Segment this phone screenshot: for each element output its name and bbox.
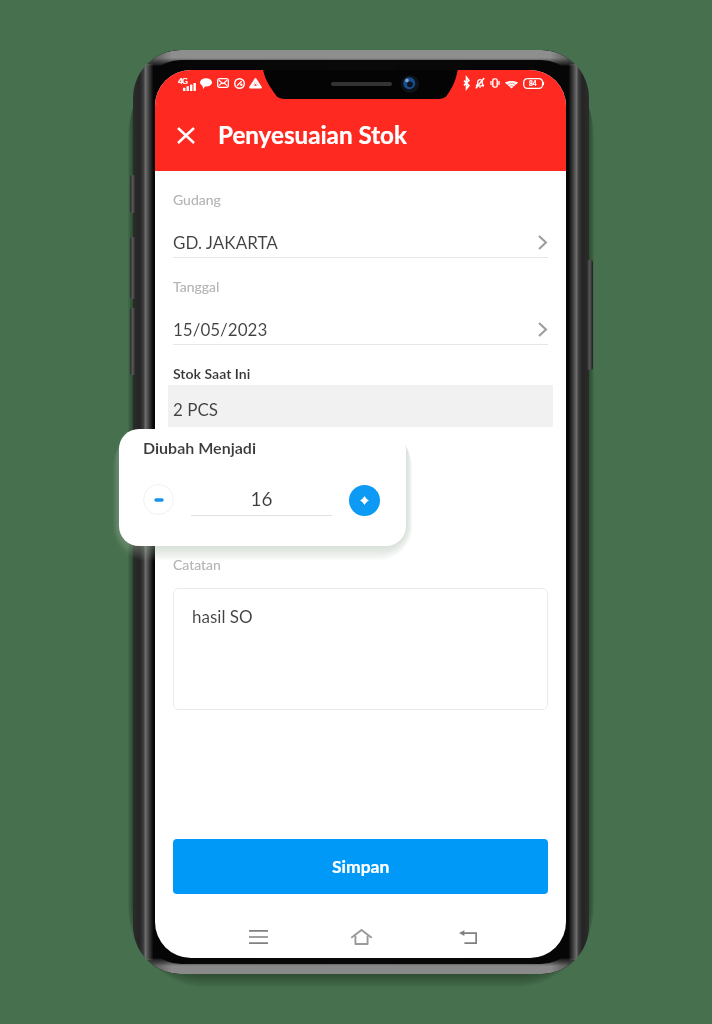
staticText: Diubah Menjadi: [143, 438, 256, 457]
staticText: GD. JAKARTA: [173, 232, 278, 252]
staticText: Tanggal: [173, 278, 220, 295]
staticText: 2 PCS: [173, 399, 218, 419]
staticText: 16: [250, 487, 273, 510]
staticText: Simpan: [332, 856, 390, 877]
button[interactable]: Simpan: [173, 839, 548, 894]
staticText: Stok Saat Ini: [173, 365, 251, 382]
button[interactable]: Decrease: [143, 484, 174, 515]
button[interactable]: [173, 588, 548, 710]
button[interactable]: Back: [446, 915, 490, 958]
staticText: 4G: [178, 76, 187, 86]
staticText: Catatan: [173, 556, 221, 573]
staticText: 15/05/2023: [173, 319, 268, 339]
staticText: Penyesuaian Stok: [218, 120, 407, 149]
staticText: 84: [529, 80, 537, 88]
staticText: Gudang: [173, 191, 221, 208]
button[interactable]: 15/05/2023: [173, 312, 548, 348]
staticText: hasil SO: [192, 606, 253, 626]
button[interactable]: Increase: [349, 485, 380, 516]
button[interactable]: Recent apps: [236, 915, 280, 958]
button[interactable]: GD. JAKARTA: [173, 225, 548, 261]
button[interactable]: Home: [339, 915, 383, 958]
button[interactable]: Close: [165, 114, 207, 156]
